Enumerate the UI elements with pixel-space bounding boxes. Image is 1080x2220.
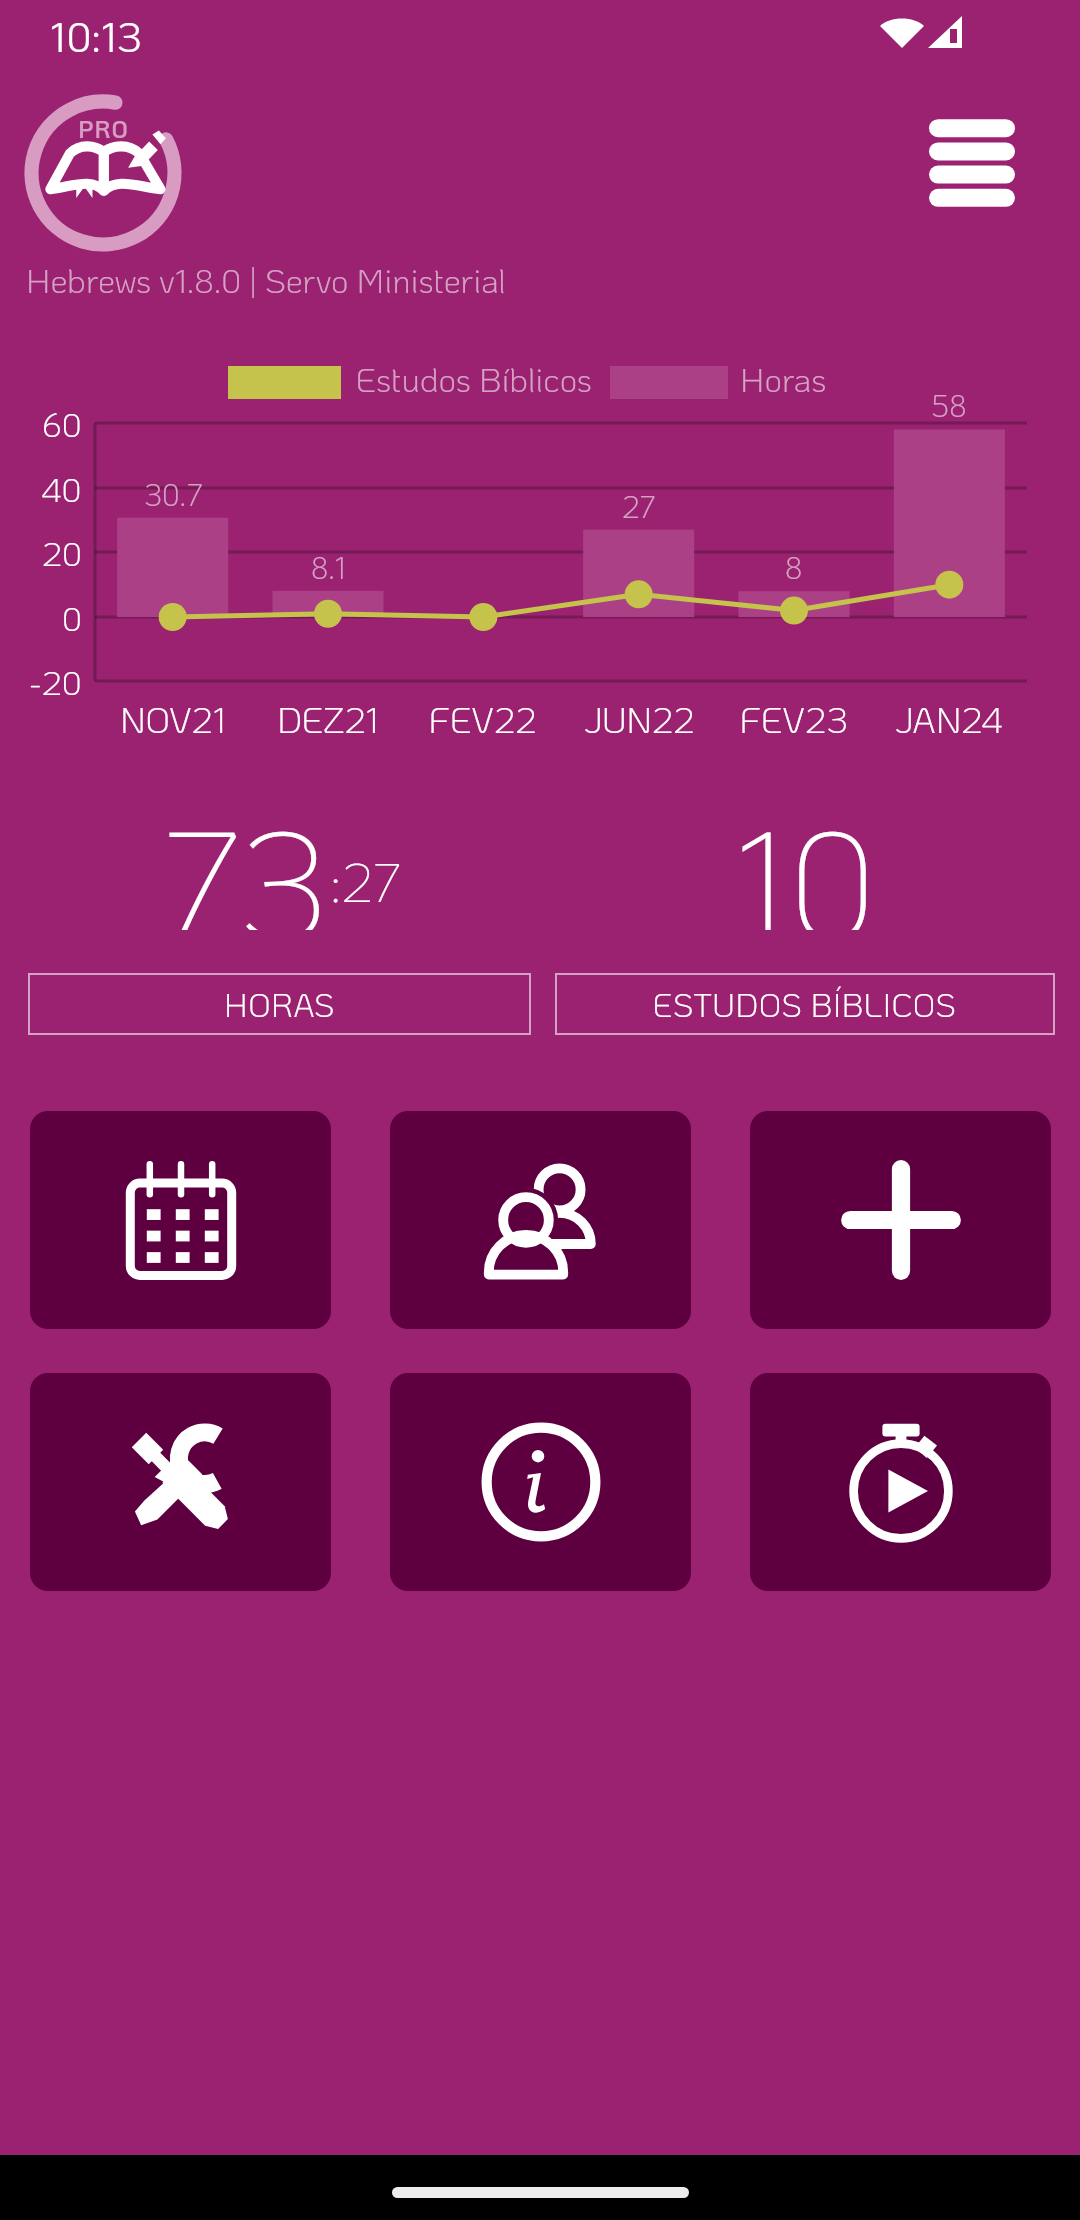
staticText: HORAS (224, 983, 335, 1026)
staticText: 40 (41, 466, 82, 510)
staticText: Estudos Bíblicos (356, 356, 592, 398)
button[interactable]: Menu (908, 98, 1036, 228)
staticText: FEV23 (740, 695, 849, 739)
button[interactable]: HORAS (28, 973, 531, 1035)
button[interactable]: People (390, 1111, 691, 1329)
staticText: 10 (734, 780, 877, 930)
button[interactable]: Timer (750, 1373, 1051, 1591)
button[interactable]: Calendar (30, 1111, 331, 1329)
button[interactable]: Tools (30, 1373, 331, 1591)
button[interactable]: Add (750, 1111, 1051, 1329)
staticText: JUN22 (584, 695, 695, 739)
staticText: 60 (42, 401, 82, 445)
button[interactable]: ESTUDOS BÍBLICOS (555, 973, 1055, 1035)
staticText: 30.7 (144, 475, 203, 514)
staticText: -20 (29, 659, 82, 703)
staticText: JAN24 (895, 695, 1003, 739)
staticText: 20 (42, 530, 82, 574)
staticText: DEZ21 (277, 695, 379, 739)
staticText: ESTUDOS BÍBLICOS (653, 983, 957, 1026)
staticText: 27 (622, 487, 656, 526)
staticText: 8.1 (311, 548, 346, 587)
staticText: 8 (785, 548, 803, 587)
staticText: Horas (740, 356, 827, 398)
staticText: Hebrews v1.8.0 | Servo Ministerial (26, 257, 506, 301)
staticText: :27 (330, 846, 401, 916)
staticText: NOV21 (120, 695, 226, 739)
staticText: PRO (78, 113, 129, 143)
staticText: 58 (931, 386, 967, 425)
staticText: 0 (62, 595, 82, 639)
button[interactable]: Info (390, 1373, 691, 1591)
staticText: 73 (159, 780, 330, 930)
staticText: FEV22 (429, 695, 537, 739)
staticText: 10:13 (50, 8, 143, 63)
